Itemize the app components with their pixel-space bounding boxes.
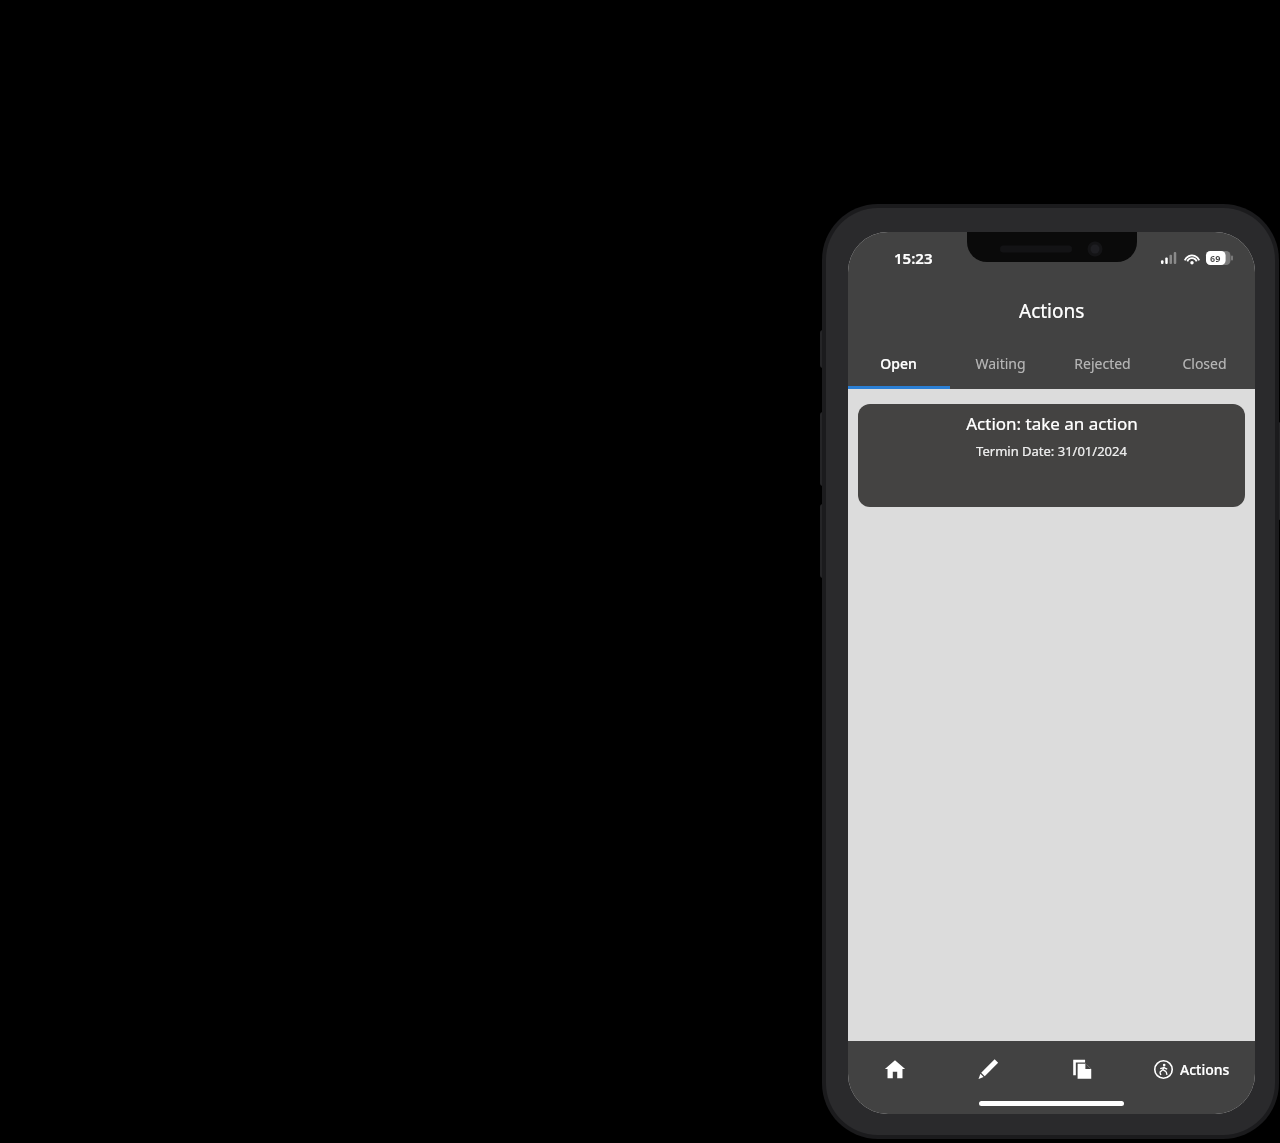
staticText: Rejected — [1074, 354, 1131, 373]
button[interactable]: Edit — [941, 1041, 1035, 1097]
staticText: 15:23 — [894, 248, 933, 268]
button[interactable]: Home — [848, 1041, 941, 1097]
staticText: 69 — [1210, 252, 1221, 264]
staticText: Actions — [1180, 1060, 1230, 1079]
staticText: Action: take an action — [966, 412, 1138, 435]
button[interactable]: Closed — [1153, 340, 1255, 386]
staticText: Termin Date: 31/01/2024 — [976, 442, 1127, 460]
button[interactable]: Open — [848, 340, 949, 386]
button[interactable]: Documents — [1035, 1041, 1129, 1097]
staticText: Actions — [1019, 298, 1085, 324]
button[interactable]: Actions — [1129, 1041, 1255, 1097]
button[interactable]: Action: take an action — [858, 404, 1245, 507]
button[interactable]: Rejected — [1051, 340, 1153, 386]
button[interactable]: Waiting — [949, 340, 1051, 386]
staticText: Open — [880, 354, 917, 373]
staticText: Waiting — [975, 354, 1026, 373]
staticText: Closed — [1182, 354, 1227, 373]
